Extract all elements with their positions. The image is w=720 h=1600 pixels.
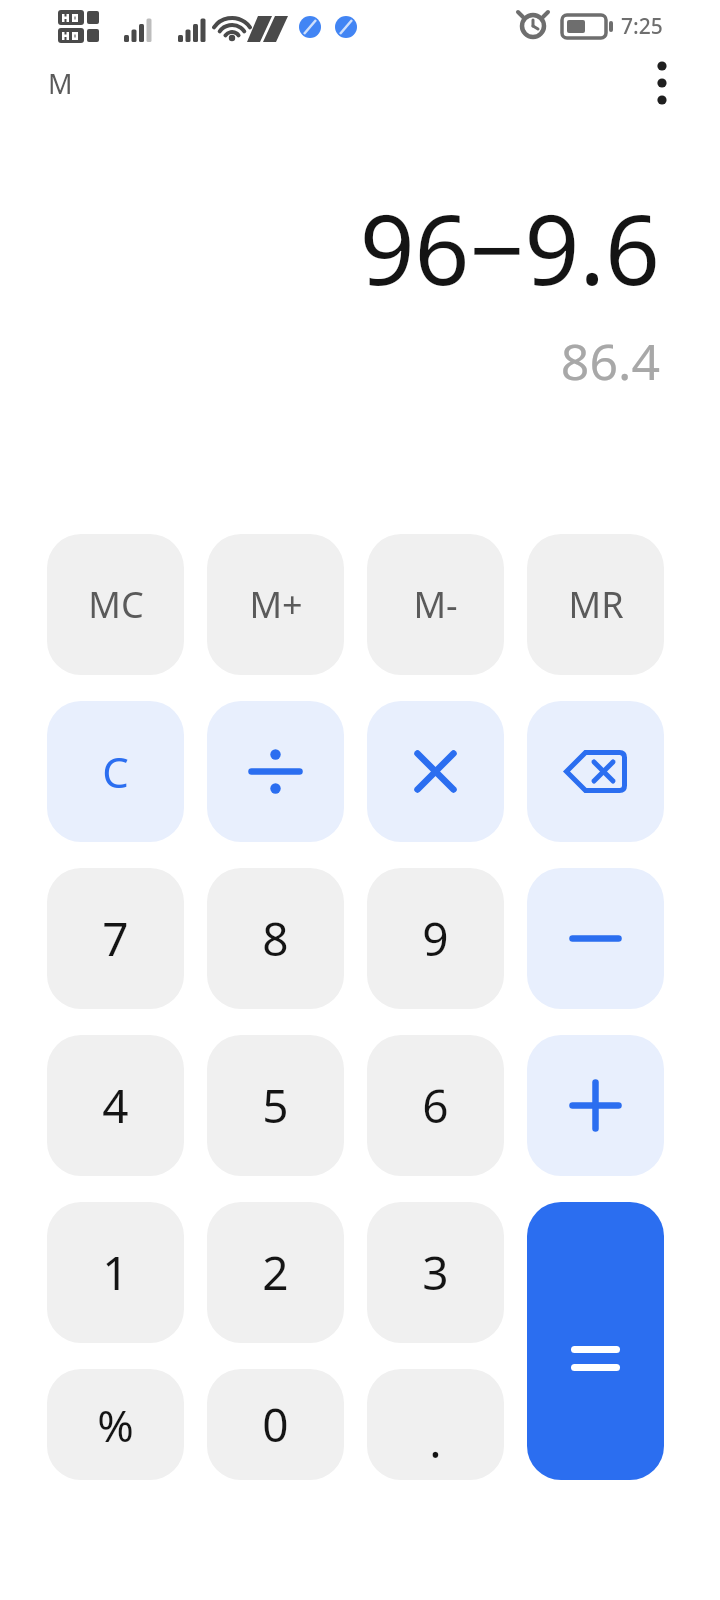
- button[interactable]: Equals: [527, 1202, 664, 1480]
- staticText: 8: [262, 907, 289, 970]
- button[interactable]: Backspace: [527, 701, 664, 842]
- staticText: .: [429, 1409, 442, 1472]
- staticText: 7: [102, 907, 129, 970]
- staticText: 96−9.6: [359, 182, 660, 313]
- button[interactable]: Subtract: [527, 868, 664, 1009]
- staticText: MR: [568, 580, 624, 629]
- staticText: 2: [262, 1241, 289, 1304]
- button[interactable]: Add: [527, 1035, 664, 1176]
- staticText: 7:25: [621, 12, 663, 41]
- staticText: 4: [102, 1074, 129, 1137]
- button[interactable]: 6: [367, 1035, 504, 1176]
- staticText: 1: [102, 1241, 129, 1304]
- button[interactable]: Multiply: [367, 701, 504, 842]
- staticText: MC: [88, 580, 144, 629]
- button[interactable]: MC: [47, 534, 184, 675]
- staticText: 3: [422, 1241, 449, 1304]
- staticText: %: [97, 1395, 134, 1455]
- staticText: 6: [422, 1074, 449, 1137]
- button[interactable]: 9: [367, 868, 504, 1009]
- button[interactable]: .: [367, 1369, 504, 1480]
- button[interactable]: 4: [47, 1035, 184, 1176]
- button[interactable]: M+: [207, 534, 344, 675]
- button[interactable]: 5: [207, 1035, 344, 1176]
- button[interactable]: C: [47, 701, 184, 842]
- staticText: 5: [262, 1074, 289, 1137]
- button[interactable]: 7: [47, 868, 184, 1009]
- button[interactable]: 1: [47, 1202, 184, 1343]
- staticText: M-: [413, 580, 458, 629]
- staticText: 0: [262, 1393, 289, 1456]
- button[interactable]: 8: [207, 868, 344, 1009]
- button[interactable]: M-: [367, 534, 504, 675]
- button[interactable]: %: [47, 1369, 184, 1480]
- button[interactable]: 2: [207, 1202, 344, 1343]
- staticText: M+: [249, 580, 303, 629]
- button[interactable]: M: [48, 65, 73, 102]
- button[interactable]: More options: [634, 55, 690, 111]
- staticText: C: [102, 743, 129, 800]
- staticText: 9: [422, 907, 449, 970]
- button[interactable]: Divide: [207, 701, 344, 842]
- button[interactable]: MR: [527, 534, 664, 675]
- button[interactable]: 0: [207, 1369, 344, 1480]
- staticText: 86.4: [560, 327, 660, 395]
- button[interactable]: 3: [367, 1202, 504, 1343]
